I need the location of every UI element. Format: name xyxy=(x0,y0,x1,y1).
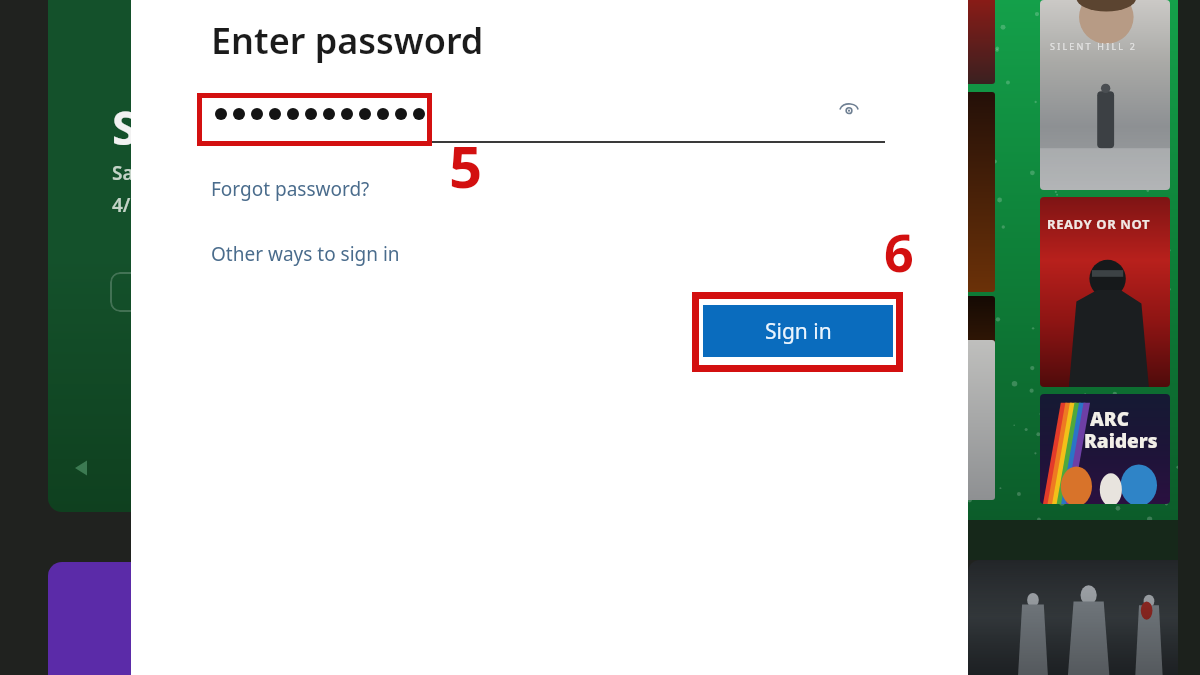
staticText: Raiders xyxy=(1084,428,1158,454)
button[interactable] xyxy=(962,92,995,292)
staticText: Enter password xyxy=(211,16,484,65)
button[interactable]: Show password xyxy=(831,92,867,128)
staticText: 6 xyxy=(884,216,914,287)
staticText: SILENT HILL 2 xyxy=(1050,40,1138,52)
staticText: 5 xyxy=(449,126,483,205)
button[interactable]: S xyxy=(48,0,168,512)
button[interactable]: Forgot password? xyxy=(211,176,370,202)
staticText: 4/ xyxy=(112,192,131,218)
staticText: Other ways to sign in xyxy=(211,241,400,267)
button[interactable]: Sign in xyxy=(703,305,893,357)
button[interactable]: ARC xyxy=(1040,394,1170,504)
button[interactable]: READY OR NOT xyxy=(1040,197,1170,387)
button[interactable] xyxy=(968,560,1200,675)
button[interactable] xyxy=(962,0,995,84)
staticText: S xyxy=(112,96,138,159)
button[interactable] xyxy=(962,296,995,388)
staticText: Sign in xyxy=(765,317,832,346)
staticText: Forgot password? xyxy=(211,176,370,202)
staticText: READY OR NOT xyxy=(1047,215,1151,233)
button[interactable] xyxy=(48,562,168,675)
staticText: Sa xyxy=(112,160,134,186)
button[interactable]: SILENT HILL 2 xyxy=(1040,0,1170,190)
staticText: ARC xyxy=(1090,406,1129,432)
button[interactable] xyxy=(962,340,995,500)
button[interactable]: Other ways to sign in xyxy=(211,241,400,267)
button[interactable] xyxy=(110,272,168,312)
